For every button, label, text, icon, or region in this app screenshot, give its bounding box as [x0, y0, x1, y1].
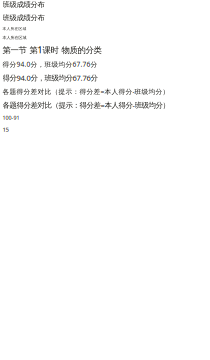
staticText: 各题得分差对比（提示：得分差=本人得分-班级均分） [2, 100, 169, 110]
staticText: 本人所在区域 [2, 26, 26, 31]
staticText: 各题得分差对比（提示：得分差=本人得分-班级均分） [2, 87, 169, 96]
staticText: 100-91 [2, 114, 19, 121]
staticText: 得分94.0分，班级均分67.76分 [2, 60, 97, 69]
staticText: 班级成绩分布 [2, 13, 44, 22]
staticText: 第一节 第1课时 物质的分类 [2, 44, 101, 56]
staticText: 本人所在区域 [2, 35, 26, 40]
staticText: 得分94.0分，班级均分67.76分 [2, 73, 97, 83]
staticText: 班级成绩分布 [2, 0, 44, 9]
staticText: 15 [2, 125, 8, 134]
